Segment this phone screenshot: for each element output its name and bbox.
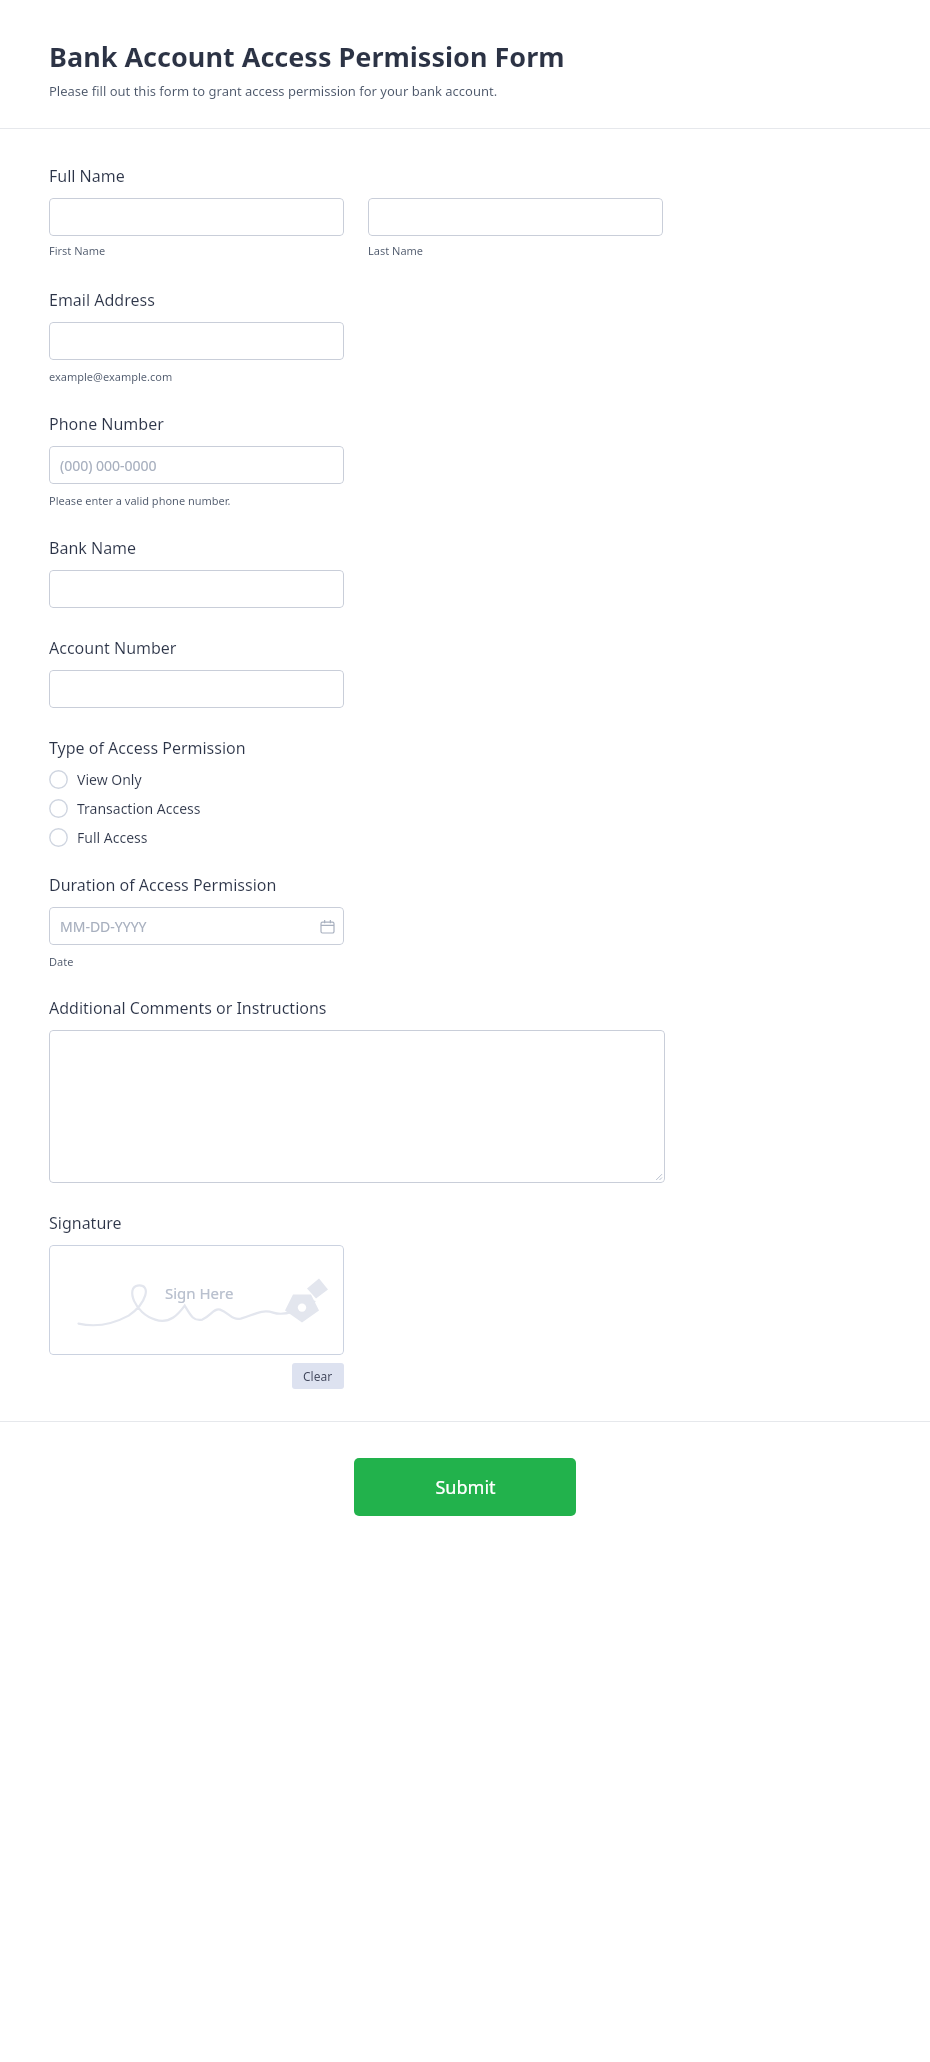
- staticText: Bank Name: [49, 537, 137, 559]
- button[interactable]: Full Access: [49, 823, 148, 852]
- staticText: Type of Access Permission: [49, 737, 246, 759]
- button[interactable]: Transaction Access: [49, 794, 201, 823]
- staticText: First Name: [49, 243, 106, 258]
- staticText: Clear: [303, 1368, 333, 1384]
- staticText: Date: [49, 954, 74, 969]
- staticText: (000) 000-0000: [60, 456, 157, 475]
- staticText: Signature: [49, 1212, 122, 1234]
- button[interactable]: Submit: [354, 1458, 576, 1516]
- button[interactable]: [49, 198, 344, 236]
- staticText: Full Access: [77, 828, 148, 847]
- staticText: Sign Here: [165, 1283, 234, 1303]
- staticText: View Only: [77, 770, 142, 789]
- button[interactable]: (000) 000-0000: [49, 446, 344, 484]
- button[interactable]: Clear: [292, 1363, 344, 1389]
- staticText: Please enter a valid phone number.: [49, 493, 231, 508]
- staticText: Account Number: [49, 637, 177, 659]
- button[interactable]: [49, 570, 344, 608]
- button[interactable]: [49, 322, 344, 360]
- staticText: Bank Account Access Permission Form: [49, 38, 565, 75]
- staticText: Additional Comments or Instructions: [49, 997, 327, 1019]
- button[interactable]: [49, 1030, 665, 1183]
- staticText: Full Name: [49, 165, 125, 187]
- staticText: Please fill out this form to grant acces…: [49, 82, 498, 100]
- button[interactable]: Open calendar: [321, 920, 334, 933]
- staticText: Submit: [435, 1475, 496, 1500]
- button[interactable]: [368, 198, 663, 236]
- staticText: example@example.com: [49, 369, 173, 384]
- button[interactable]: Signature pad, sign here: [49, 1245, 344, 1355]
- staticText: MM-DD-YYYY: [60, 917, 147, 936]
- staticText: Last Name: [368, 243, 424, 258]
- staticText: Transaction Access: [77, 799, 201, 818]
- button[interactable]: View Only: [49, 765, 142, 794]
- staticText: Phone Number: [49, 413, 164, 435]
- staticText: Email Address: [49, 289, 155, 311]
- staticText: Duration of Access Permission: [49, 874, 277, 896]
- button[interactable]: MM-DD-YYYY: [49, 907, 344, 945]
- button[interactable]: [49, 670, 344, 708]
